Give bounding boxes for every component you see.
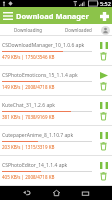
- staticText: Downloading: [14, 27, 43, 33]
- button[interactable]: Back: [20, 186, 34, 200]
- button[interactable]: KuteChat_31_1.2.6 apk: [0, 96, 112, 125]
- button[interactable]: Account: [101, 26, 110, 35]
- button[interactable]: Delete: [98, 111, 109, 121]
- button[interactable]: Add download: [96, 8, 112, 24]
- button[interactable]: Pause: [98, 160, 109, 170]
- button[interactable]: Home: [49, 186, 63, 200]
- staticText: CutepaperAnime_8_1.10.7 apk: [2, 132, 74, 139]
- staticText: 405 KB/s | 2008/4718 KB: [2, 174, 55, 180]
- staticText: CSPhotoEditor_14_1.1.4 apk: [2, 162, 68, 169]
- staticText: Downloaded: [65, 27, 92, 33]
- staticText: Download Manager: [16, 11, 89, 21]
- button[interactable]: Pause: [98, 40, 109, 50]
- button[interactable]: Pause: [98, 100, 109, 110]
- staticText: 5:52: [100, 0, 111, 7]
- button[interactable]: Delete: [98, 141, 109, 151]
- button[interactable]: Delete: [98, 51, 109, 61]
- button[interactable]: Pause: [98, 130, 109, 140]
- staticText: 479 KB/s | 1750/3546 KB: [2, 54, 55, 60]
- button[interactable]: Recent apps: [78, 186, 92, 200]
- button[interactable]: CSPhotoEditor_14_1.1.4 apk: [0, 156, 112, 185]
- button[interactable]: Downloading: [0, 24, 56, 36]
- staticText: CSPhotoEmoticons_15_1.1.4 apk: [2, 72, 78, 79]
- staticText: 149 KB/s | 2008/4718 KB: [2, 84, 55, 90]
- button[interactable]: Resume: [98, 70, 109, 80]
- button[interactable]: Menu: [0, 8, 16, 24]
- staticText: CSDownloadManager_10_1.0.6 apk: [2, 42, 85, 49]
- button[interactable]: CSPhotoEmoticons_15_1.1.4 apk: [0, 66, 112, 95]
- staticText: 381 KB/s | 7038/9169 KB: [2, 114, 55, 120]
- button[interactable]: CutepaperAnime_8_1.10.7 apk: [0, 126, 112, 155]
- staticText: KuteChat_31_1.2.6 apk: [2, 102, 55, 109]
- staticText: 203 KB/s | 1315/3319 KB: [2, 144, 55, 150]
- button[interactable]: CSDownloadManager_10_1.0.6 apk: [0, 36, 112, 65]
- button[interactable]: Delete: [98, 171, 109, 181]
- button[interactable]: Delete: [98, 81, 109, 91]
- button[interactable]: Downloaded: [56, 24, 100, 36]
